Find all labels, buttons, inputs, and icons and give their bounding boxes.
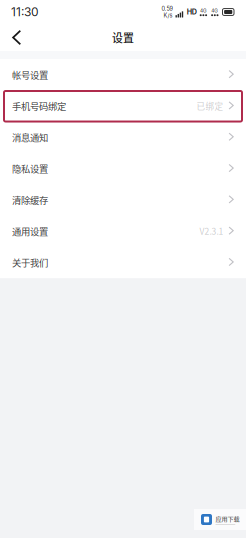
staticText: 0.59 bbox=[161, 5, 172, 12]
button[interactable]: 通用设置 bbox=[0, 215, 246, 247]
staticText: 消息通知 bbox=[12, 130, 48, 144]
staticText: 应用下载 bbox=[215, 514, 239, 523]
button[interactable]: 隐私设置 bbox=[0, 153, 246, 184]
staticText: 设置 bbox=[112, 30, 134, 45]
button[interactable]: 关于我们 bbox=[0, 247, 246, 278]
button[interactable]: 帐号设置 bbox=[0, 59, 246, 90]
button[interactable]: 清除缓存 bbox=[0, 184, 246, 215]
staticText: 已绑定 bbox=[196, 100, 223, 112]
staticText: 通用设置 bbox=[12, 224, 48, 238]
button[interactable]: 消息通知 bbox=[0, 122, 246, 153]
staticText: V2.3.1 bbox=[199, 225, 223, 237]
staticText: HD bbox=[187, 8, 197, 16]
staticText: 隐私设置 bbox=[12, 162, 48, 175]
staticText: 11:30 bbox=[11, 5, 39, 19]
staticText: 帐号设置 bbox=[12, 68, 48, 81]
staticText: 4G bbox=[200, 8, 207, 14]
staticText: K/s bbox=[163, 12, 172, 19]
staticText: 清除缓存 bbox=[12, 193, 48, 207]
button[interactable]: Back bbox=[0, 24, 30, 51]
staticText: 4G bbox=[211, 8, 218, 14]
button[interactable]: 手机号码绑定 bbox=[0, 90, 246, 122]
staticText: 关于我们 bbox=[12, 256, 48, 269]
staticText: 手机号码绑定 bbox=[12, 99, 66, 113]
